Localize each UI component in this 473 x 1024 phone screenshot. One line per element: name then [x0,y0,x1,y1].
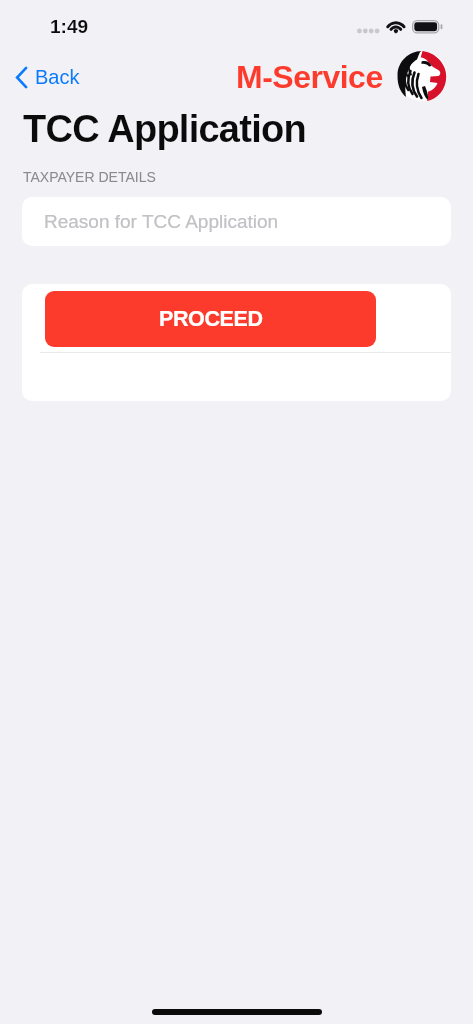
button[interactable]: M-Service logo [397,51,447,101]
staticText: TAXPAYER DETAILS [23,169,156,185]
staticText: Reason for TCC Application [44,211,279,232]
button[interactable]: Back [13,60,80,94]
staticText: PROCEED [159,307,263,331]
staticText: TCC Application [23,108,306,150]
staticText: Back [35,66,80,88]
button[interactable]: Reason for TCC Application [22,197,451,246]
staticText: M-Service [236,59,383,95]
staticText: 1:49 [50,16,89,37]
button[interactable]: PROCEED [45,291,376,347]
